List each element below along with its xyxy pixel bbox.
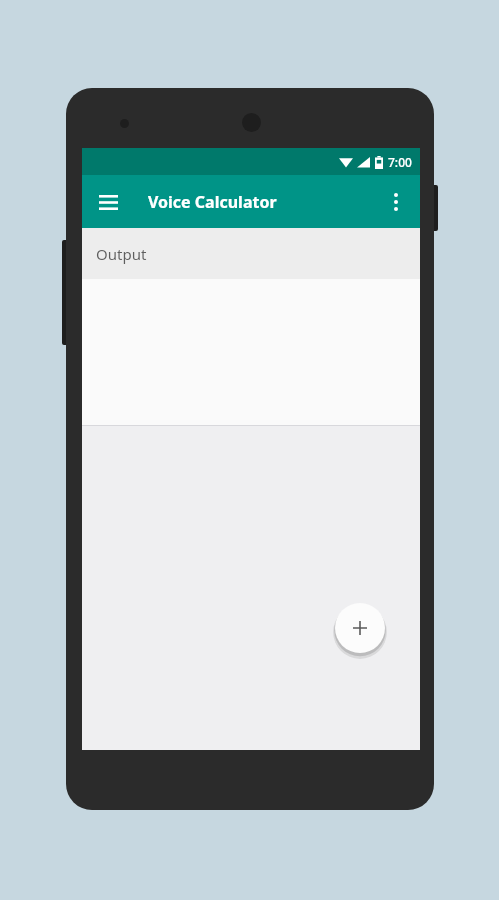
staticText: Voice Calculator [148,191,277,213]
button[interactable]: More options [378,184,414,220]
staticText: 7:00 [388,154,412,170]
staticText: Output [96,244,147,264]
button[interactable]: Open navigation drawer [90,184,126,220]
button[interactable]: Add [335,603,385,653]
button[interactable]: Output [82,228,420,279]
